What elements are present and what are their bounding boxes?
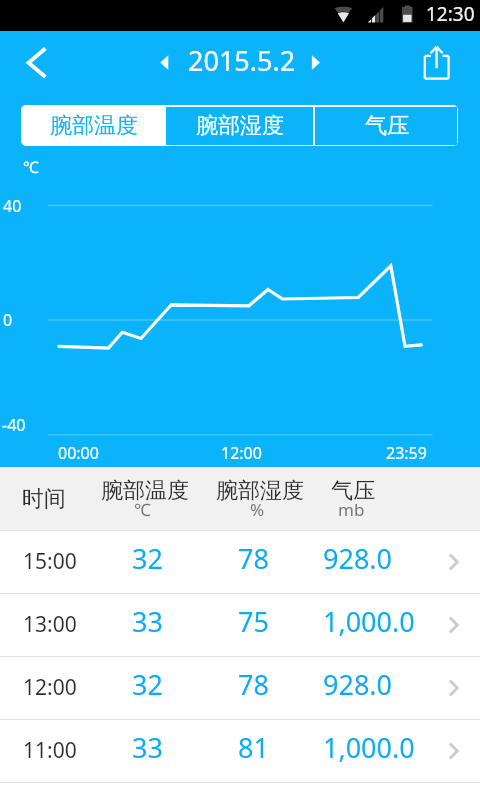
button[interactable]: Next day <box>300 39 332 87</box>
staticText: 气压 <box>365 112 409 140</box>
staticText: 12:30 <box>426 1 475 27</box>
staticText: 腕部温度 <box>101 477 189 505</box>
staticText: 12:00 <box>23 673 77 702</box>
staticText: 1,000.0 <box>323 603 415 640</box>
button[interactable]: 腕部湿度 <box>166 105 313 146</box>
button[interactable]: Share <box>412 31 468 98</box>
staticText: 腕部湿度 <box>196 112 284 140</box>
staticText: 75 <box>238 603 269 640</box>
staticText: 928.0 <box>323 540 393 577</box>
staticText: 928.0 <box>323 666 393 703</box>
staticText: 腕部湿度 <box>216 477 304 505</box>
staticText: % <box>250 498 265 521</box>
staticText: 33 <box>132 729 163 766</box>
staticText: 12:00 <box>221 442 262 464</box>
staticText: 腕部温度 <box>50 112 138 140</box>
staticText: mb <box>338 498 365 521</box>
button[interactable]: 15:00 <box>0 531 480 594</box>
staticText: -40 <box>2 414 26 436</box>
button[interactable]: 13:00 <box>0 594 480 657</box>
staticText: 32 <box>132 666 163 703</box>
button[interactable]: Back <box>6 31 66 98</box>
staticText: 时间 <box>22 485 66 513</box>
staticText: 2015.5.2 <box>188 42 296 79</box>
staticText: 32 <box>132 540 163 577</box>
button[interactable]: 12:00 <box>0 657 480 720</box>
staticText: ℃ <box>23 156 39 178</box>
staticText: 23:59 <box>386 442 427 464</box>
staticText: 00:00 <box>58 442 99 464</box>
button[interactable]: 11:00 <box>0 720 480 783</box>
staticText: 15:00 <box>23 547 77 576</box>
button[interactable]: Previous day <box>148 39 180 87</box>
staticText: 0 <box>3 309 13 331</box>
button[interactable]: 腕部温度 <box>21 105 166 146</box>
staticText: 81 <box>238 729 269 766</box>
staticText: 11:00 <box>23 736 77 765</box>
staticText: 33 <box>132 603 163 640</box>
button[interactable]: 气压 <box>315 105 458 146</box>
staticText: 40 <box>3 195 22 217</box>
staticText: 78 <box>238 540 269 577</box>
staticText: 78 <box>238 666 269 703</box>
staticText: 13:00 <box>23 610 77 639</box>
staticText: ℃ <box>134 498 151 521</box>
staticText: 气压 <box>331 477 375 505</box>
staticText: 1,000.0 <box>323 729 415 766</box>
